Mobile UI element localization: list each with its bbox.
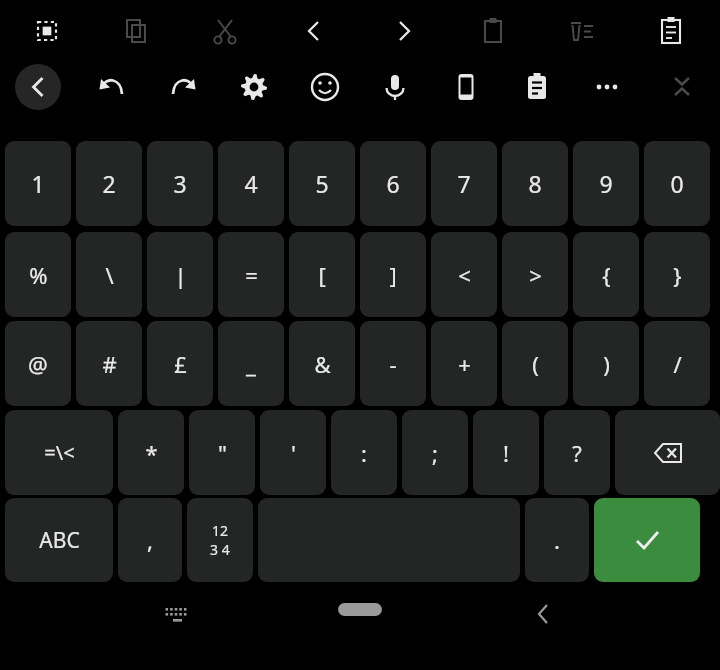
button[interactable]: , — [118, 498, 182, 582]
button[interactable]: ? — [544, 410, 610, 495]
staticText: / — [673, 349, 682, 379]
button[interactable]: ( — [502, 321, 568, 406]
button[interactable]: > — [502, 232, 568, 317]
button[interactable]: Undo — [92, 69, 132, 105]
button[interactable]: ) — [573, 321, 639, 406]
button[interactable]: Emoji — [305, 69, 345, 105]
button[interactable]: Back — [15, 64, 61, 110]
button[interactable]: Clear clipboard — [562, 16, 602, 46]
button[interactable]: Copy — [116, 16, 156, 46]
button[interactable]: 5 — [289, 141, 355, 226]
button[interactable]: < — [431, 232, 497, 317]
button[interactable]: 2 — [76, 141, 142, 226]
staticText: 3 — [173, 168, 187, 199]
button[interactable]: . — [525, 498, 589, 582]
staticText: 8 — [528, 168, 542, 199]
button[interactable]: 12 — [187, 498, 253, 582]
button[interactable]: Redo — [163, 69, 203, 105]
staticText: { — [602, 260, 611, 290]
button[interactable]: _ — [218, 321, 284, 406]
button[interactable]: = — [218, 232, 284, 317]
button[interactable]: Home — [338, 603, 382, 616]
button[interactable]: More options — [587, 69, 627, 105]
staticText: ! — [503, 438, 509, 468]
staticText: 1 — [31, 168, 45, 199]
button[interactable]: { — [573, 232, 639, 317]
button[interactable]: " — [189, 410, 255, 495]
button[interactable]: 6 — [360, 141, 426, 226]
button[interactable]: Clipboard — [517, 69, 557, 105]
button[interactable]: 7 — [431, 141, 497, 226]
button[interactable]: Switch keyboard — [155, 594, 199, 634]
staticText: - — [389, 349, 397, 379]
button[interactable]: ; — [402, 410, 468, 495]
button[interactable]: 8 — [502, 141, 568, 226]
button[interactable]: Enter — [594, 498, 700, 582]
button[interactable]: Clipboard history — [651, 16, 691, 46]
staticText: 7 — [457, 168, 471, 199]
staticText: £ — [174, 349, 187, 379]
button[interactable]: | — [147, 232, 213, 317]
button[interactable]: 1 — [5, 141, 71, 226]
staticText: % — [29, 260, 48, 290]
staticText: ; — [432, 438, 438, 468]
button[interactable]: - — [360, 321, 426, 406]
button[interactable]: : — [331, 410, 397, 495]
button[interactable]: \ — [76, 232, 142, 317]
staticText: } — [673, 260, 682, 290]
button[interactable]: =\< — [5, 410, 113, 495]
button[interactable]: One handed mode — [446, 69, 486, 105]
button[interactable]: Next — [384, 16, 424, 46]
staticText: _ — [246, 349, 256, 379]
button[interactable]: [ — [289, 232, 355, 317]
button[interactable]: ABC — [5, 498, 113, 582]
button[interactable]: ' — [260, 410, 326, 495]
staticText: | — [174, 260, 187, 290]
staticText: > — [529, 260, 542, 290]
button[interactable]: / — [644, 321, 710, 406]
button[interactable]: % — [5, 232, 71, 317]
button[interactable]: Previous — [294, 16, 334, 46]
button[interactable]: 9 — [573, 141, 639, 226]
staticText: ( — [532, 349, 539, 379]
button[interactable]: ! — [473, 410, 539, 495]
button[interactable]: @ — [5, 321, 71, 406]
staticText: @ — [28, 349, 48, 379]
staticText: [ — [318, 260, 326, 290]
staticText: * — [145, 438, 158, 468]
button[interactable]: 3 — [147, 141, 213, 226]
button[interactable]: 0 — [644, 141, 710, 226]
button[interactable]: Voice input — [375, 69, 415, 105]
staticText: : — [361, 438, 367, 468]
button[interactable]: Backspace — [615, 410, 720, 495]
button[interactable]: } — [644, 232, 710, 317]
staticText: 5 — [315, 168, 329, 199]
button[interactable]: Select all — [27, 16, 67, 46]
button[interactable]: £ — [147, 321, 213, 406]
button[interactable]: Cut — [205, 16, 245, 46]
button[interactable]: Paste — [473, 16, 513, 46]
button[interactable]: Settings — [234, 69, 274, 105]
staticText: = — [245, 260, 258, 290]
staticText: 9 — [599, 168, 613, 199]
staticText: =\< — [44, 439, 75, 466]
button[interactable]: # — [76, 321, 142, 406]
button[interactable]: + — [431, 321, 497, 406]
staticText: 4 — [244, 168, 258, 199]
button[interactable]: ] — [360, 232, 426, 317]
staticText: " — [218, 438, 227, 468]
staticText: 2 — [102, 168, 116, 199]
button[interactable]: * — [118, 410, 184, 495]
button[interactable]: & — [289, 321, 355, 406]
staticText: < — [458, 260, 471, 290]
staticText: + — [458, 349, 471, 379]
staticText: ) — [603, 349, 610, 379]
staticText: 3 4 — [210, 540, 230, 559]
staticText: , — [147, 525, 153, 555]
staticText: # — [102, 349, 117, 379]
button[interactable]: Collapse — [662, 69, 702, 105]
button[interactable]: Back — [521, 594, 565, 634]
staticText: ] — [389, 260, 397, 290]
button[interactable]: 4 — [218, 141, 284, 226]
